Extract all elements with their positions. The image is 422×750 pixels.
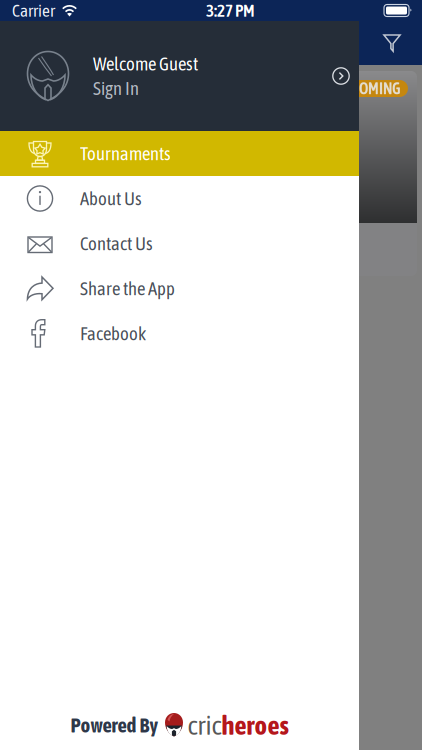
staticText: Carrier: [12, 1, 55, 20]
staticText: UPCOMING: [335, 79, 400, 98]
button[interactable]: Contact Us: [0, 221, 359, 266]
button[interactable]: Tournaments: [0, 131, 359, 176]
staticText: Sign In: [93, 77, 139, 99]
staticText: Share the App: [80, 278, 175, 299]
staticText: 3:27 PM: [206, 1, 255, 20]
button[interactable]: Share the App: [0, 266, 359, 311]
button[interactable]: About Us: [0, 176, 359, 221]
staticText: Welcome Guest: [93, 53, 198, 74]
staticText: heroes: [221, 710, 288, 740]
staticText: Contact Us: [80, 233, 153, 254]
staticText: About Us: [80, 188, 142, 209]
button[interactable]: Facebook: [0, 311, 359, 356]
staticText: Tournaments: [80, 143, 171, 164]
staticText: Facebook: [80, 323, 146, 344]
button[interactable]: Welcome Guest: [0, 21, 359, 131]
staticText: Powered By: [70, 713, 158, 737]
staticText: cric: [187, 710, 221, 740]
button[interactable]: Filter: [370, 21, 414, 65]
